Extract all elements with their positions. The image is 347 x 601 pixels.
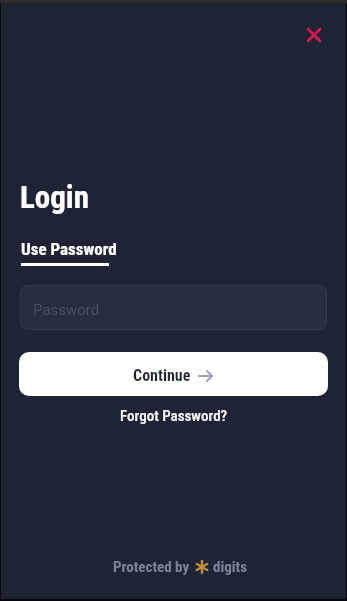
button[interactable]: Forgot Password?	[120, 407, 228, 425]
button[interactable]	[302, 23, 326, 47]
staticText: Use Password	[21, 239, 117, 259]
staticText: Password	[33, 301, 100, 319]
button[interactable]: Password	[20, 285, 327, 330]
button[interactable]: Continue	[19, 352, 328, 396]
staticText: digits	[213, 558, 247, 576]
staticText: Login	[20, 179, 89, 215]
staticText: Protected by	[113, 558, 190, 576]
staticText: Forgot Password?	[120, 407, 228, 425]
staticText: Continue	[133, 366, 191, 385]
button[interactable]: Use Password	[21, 239, 117, 266]
